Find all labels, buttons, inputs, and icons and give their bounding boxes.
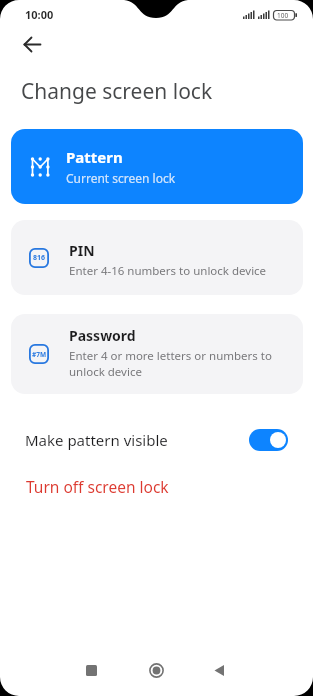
button[interactable]: Turn off screen lock <box>10 470 169 502</box>
button[interactable]: #7M <box>11 314 303 394</box>
staticText: #7M <box>32 350 47 359</box>
button[interactable] <box>194 648 244 692</box>
staticText: Make pattern visible <box>25 430 168 450</box>
button[interactable] <box>14 28 50 60</box>
button[interactable]: 816 <box>11 220 303 295</box>
staticText: Enter 4-16 numbers to unlock device <box>69 263 267 279</box>
staticText: 10:00 <box>25 7 54 22</box>
staticText: Change screen lock <box>21 77 213 106</box>
button[interactable] <box>131 648 181 692</box>
staticText: Enter 4 or more letters or numbers to un… <box>69 348 272 380</box>
staticText: Turn off screen lock <box>26 476 169 497</box>
staticText: PIN <box>69 241 95 260</box>
button[interactable] <box>66 648 116 692</box>
staticText: Current screen lock <box>66 170 176 186</box>
staticText: Password <box>69 326 136 345</box>
staticText: Pattern <box>66 147 123 167</box>
staticText: 100 <box>277 11 289 20</box>
button[interactable]: Pattern <box>11 129 303 204</box>
button[interactable]: Make pattern visible <box>25 421 288 459</box>
staticText: 816 <box>33 253 46 263</box>
